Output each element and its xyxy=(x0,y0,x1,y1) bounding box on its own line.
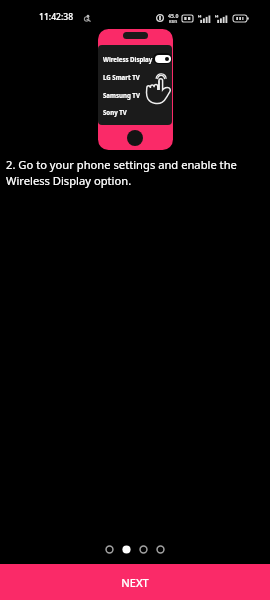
button[interactable]: NEXT xyxy=(0,564,270,600)
button[interactable]: Page 3 xyxy=(139,545,148,554)
staticText: KB/S xyxy=(169,19,178,24)
staticText: 2. Go to your phone settings and enable … xyxy=(6,157,249,188)
staticText: NEXT xyxy=(121,575,149,590)
staticText: Samsung TV xyxy=(103,91,140,99)
button[interactable]: Page 4 xyxy=(156,545,165,554)
staticText: Sony TV xyxy=(103,108,127,116)
staticText: Wireless Display xyxy=(103,55,153,63)
staticText: LG Smart TV xyxy=(103,73,140,81)
staticText: 45.0 xyxy=(168,12,179,19)
button[interactable]: Page 2 xyxy=(122,545,131,554)
button[interactable]: Page 1 xyxy=(105,545,114,554)
button[interactable]: Wireless Display toggle xyxy=(153,53,172,64)
staticText: 11:42:38 xyxy=(39,11,74,23)
